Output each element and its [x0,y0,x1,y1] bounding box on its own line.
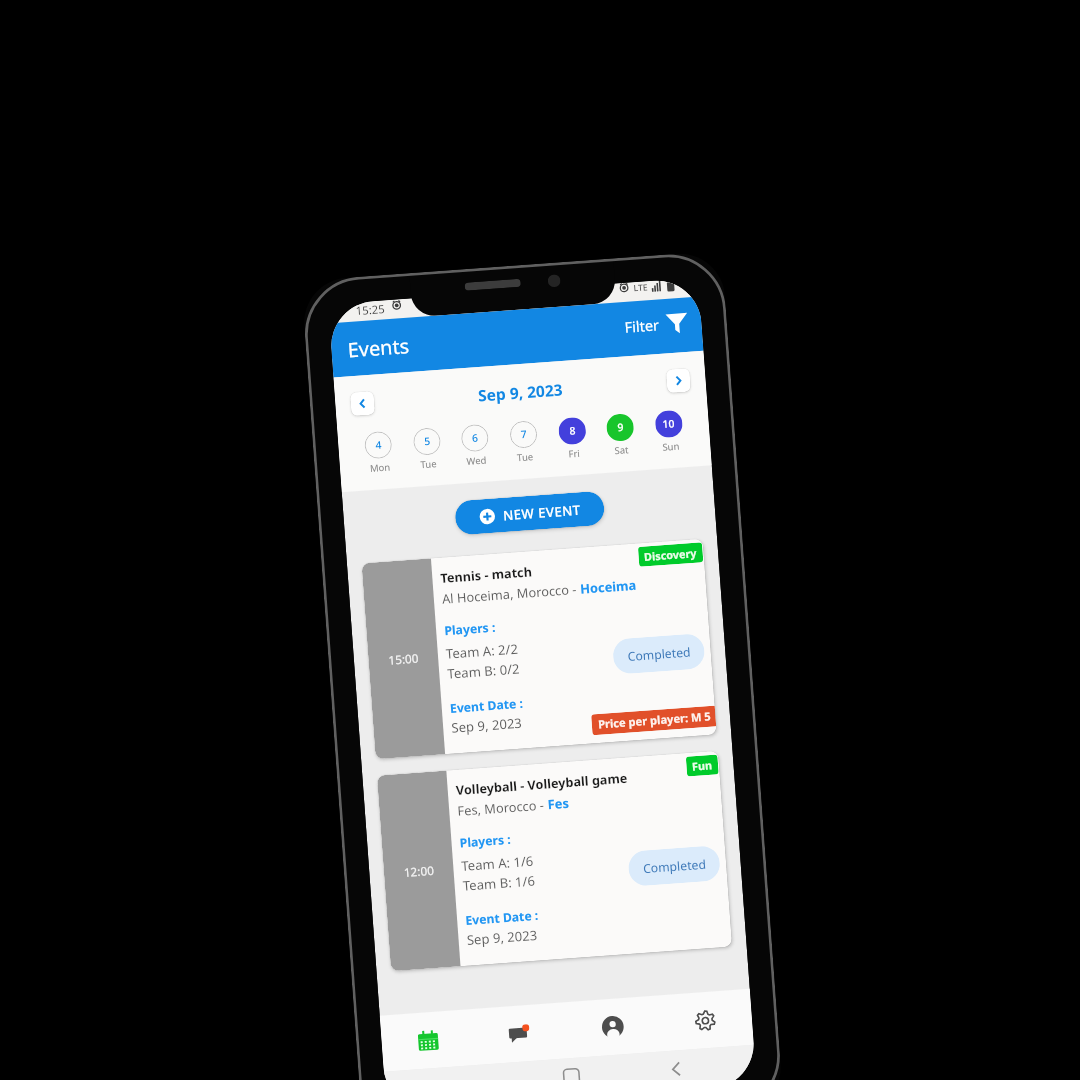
button[interactable]: 10 [654,409,685,454]
staticText: Mon [369,460,391,475]
staticText: Hoceima [579,576,638,597]
staticText: Al Hoceima, Morocco - [441,580,581,607]
staticText: 10 [662,416,676,432]
staticText: Price per player: M 5 [598,709,711,732]
staticText: Tue [517,450,534,464]
button[interactable]: 6 [460,423,490,468]
staticText: 8 [569,423,576,438]
staticText: NEW EVENT [502,500,581,524]
button[interactable]: Messages [472,1002,568,1065]
staticText: Team A: 1/6 [461,851,534,874]
staticText: Sat [614,443,629,457]
staticText: Discovery [643,545,698,564]
staticText: LTE [633,281,648,294]
button[interactable]: Settings [657,989,754,1052]
staticText: Completed [642,856,707,877]
staticText: Event Date : [449,695,524,717]
staticText: 6 [472,431,479,445]
staticText: Team B: 0/2 [447,659,520,682]
staticText: Volleyball - Volleyball game [455,769,628,799]
button[interactable]: Calendar [380,1009,476,1072]
staticText: Completed [627,644,691,665]
staticText: Event Date : [465,907,539,929]
staticText: 15:00 [388,650,420,668]
button[interactable]: Profile [564,996,661,1058]
staticText: Team A: 2/2 [445,639,519,662]
button[interactable]: 15:00 [361,539,717,759]
staticText: Wed [466,454,487,468]
button[interactable]: 12:00 [377,751,732,971]
button[interactable]: Previous day [350,391,375,416]
button[interactable]: 5 [412,427,443,471]
staticText: 7 [520,427,528,442]
staticText: Events [347,331,410,363]
button[interactable]: Back [668,1061,684,1077]
staticText: Fes, Morocco - [457,796,548,819]
button[interactable]: Filter [624,313,688,337]
button[interactable]: 4 [364,431,394,475]
button[interactable]: Completed [612,633,706,675]
staticText: Sep 9, 2023 [466,925,538,949]
staticText: Sep 9, 2023 [451,713,522,736]
staticText: 12:00 [403,862,435,881]
button[interactable]: Home [563,1068,580,1080]
staticText: Tennis - match [440,563,533,587]
staticText: Fes [547,794,570,813]
button[interactable]: 8 [558,416,588,461]
staticText: Players : [444,619,496,639]
button[interactable]: Next day [666,368,691,393]
button[interactable]: NEW EVENT [454,490,605,536]
staticText: Fri [568,447,581,460]
staticText: Fun [691,757,713,773]
staticText: 9 [617,420,624,435]
button[interactable]: 9 [606,413,636,457]
button[interactable]: Completed [627,845,721,887]
staticText: Players : [459,831,512,851]
staticText: Sep 9, 2023 [477,379,564,406]
staticText: Sun [662,440,680,453]
staticText: 4 [375,438,382,452]
staticText: 15:25 [355,301,385,319]
staticText: Tue [420,457,437,471]
button[interactable]: 7 [509,420,539,464]
staticText: 5 [424,434,431,449]
staticText: Team B: 1/6 [462,871,536,894]
staticText: Filter [624,315,660,337]
